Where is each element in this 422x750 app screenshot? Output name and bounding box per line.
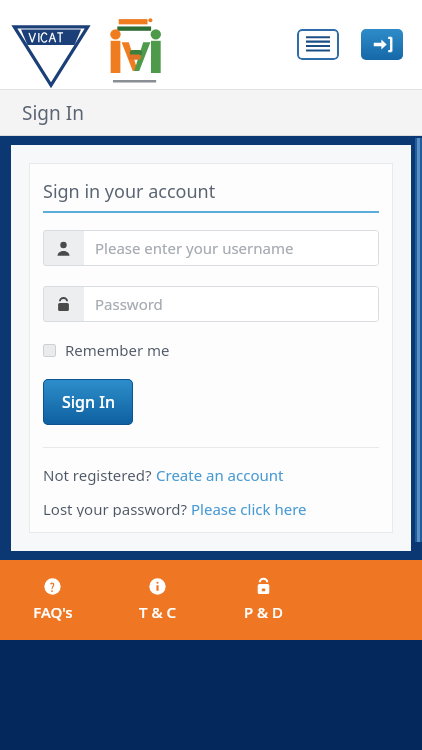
button[interactable]: Not registered? bbox=[43, 465, 284, 485]
button[interactable]: P & D bbox=[210, 560, 316, 640]
staticText: Please click here bbox=[191, 499, 307, 517]
button[interactable]: Remember me bbox=[43, 338, 170, 362]
staticText: T & C bbox=[139, 602, 176, 622]
staticText: Not registered? bbox=[43, 465, 156, 485]
button[interactable]: Sign in bbox=[361, 29, 403, 60]
staticText: P & D bbox=[244, 602, 283, 622]
button[interactable]: Password bbox=[43, 286, 379, 322]
staticText: Password bbox=[95, 294, 163, 314]
staticText: Lost your password? bbox=[43, 499, 191, 517]
staticText: Please enter your username bbox=[95, 238, 294, 258]
button[interactable]: T & C bbox=[105, 560, 210, 640]
staticText: Create an account bbox=[156, 465, 284, 485]
staticText: Remember me bbox=[65, 340, 170, 360]
staticText: Sign In bbox=[22, 100, 84, 126]
staticText: FAQ's bbox=[33, 602, 73, 622]
button[interactable]: Sign In bbox=[43, 379, 133, 425]
button[interactable]: FAQ's bbox=[0, 560, 105, 640]
button[interactable]: Menu bbox=[297, 29, 339, 60]
button[interactable]: Please enter your username bbox=[43, 230, 379, 266]
staticText: Sign In bbox=[62, 391, 115, 413]
staticText: Sign in your account bbox=[43, 179, 216, 204]
button[interactable]: Lost your password? bbox=[43, 499, 307, 517]
